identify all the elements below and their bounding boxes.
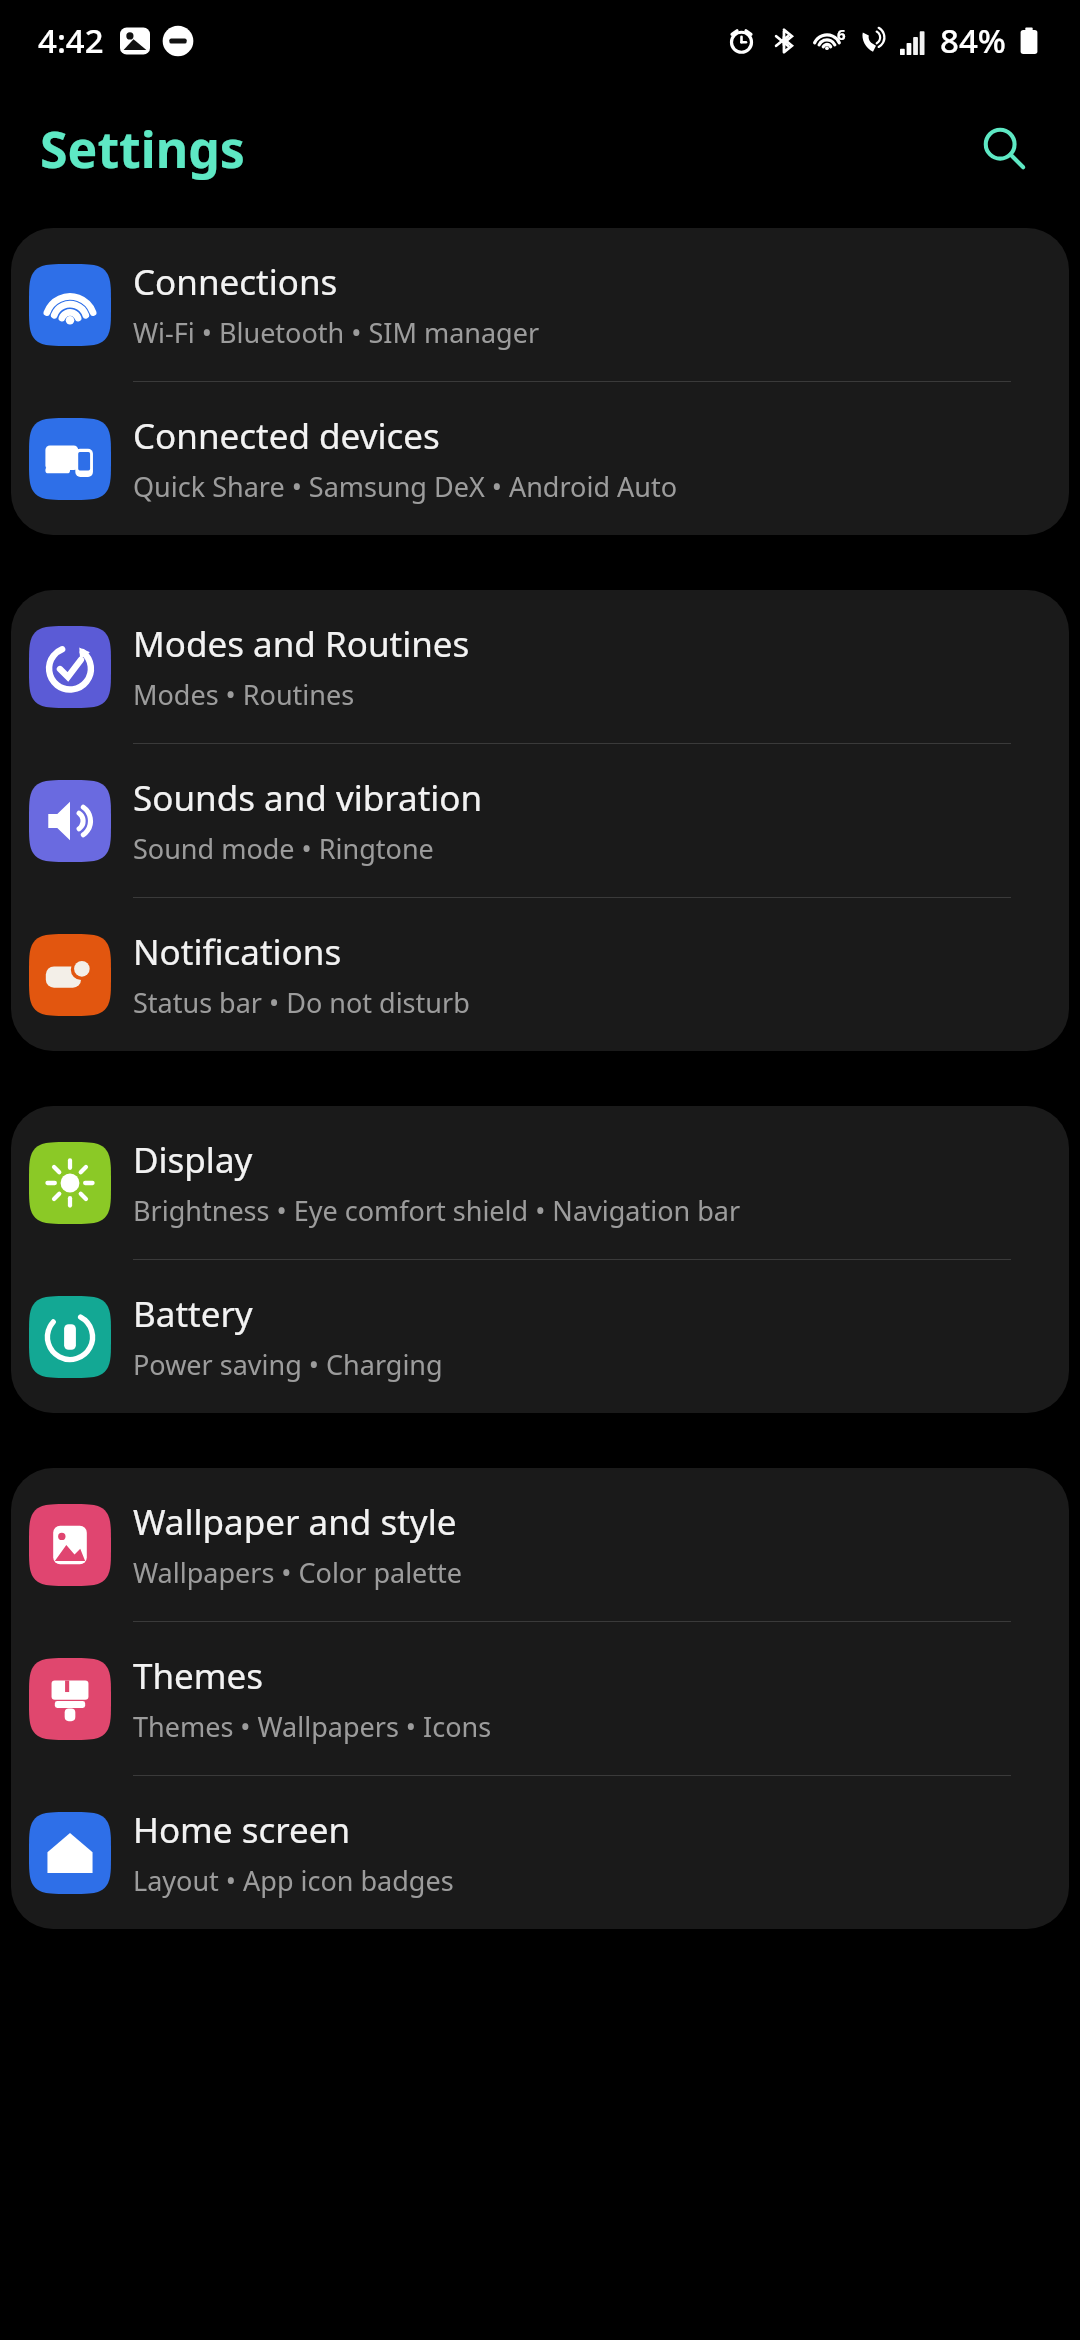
staticText: Wallpaper and style <box>133 1498 457 1546</box>
staticText: Modes • Routines <box>133 676 355 713</box>
staticText: Connections <box>133 258 338 306</box>
button[interactable]: Search <box>962 107 1046 191</box>
staticText: 4:42 <box>38 18 104 63</box>
staticText: Status bar • Do not disturb <box>133 984 470 1021</box>
staticText: Home screen <box>133 1806 351 1854</box>
staticText: Connected devices <box>133 412 440 460</box>
staticText: Notifications <box>133 928 342 976</box>
button[interactable]: Modes and Routines <box>11 590 1069 743</box>
button[interactable]: Home screen <box>11 1776 1069 1929</box>
staticText: Themes • Wallpapers • Icons <box>133 1708 492 1745</box>
staticText: Sounds and vibration <box>133 774 483 822</box>
staticText: Wallpapers • Color palette <box>133 1554 463 1591</box>
staticText: 6 <box>837 24 846 44</box>
staticText: Modes and Routines <box>133 620 470 668</box>
staticText: Layout • App icon badges <box>133 1862 454 1899</box>
button[interactable]: Battery <box>11 1260 1069 1413</box>
button[interactable]: Themes <box>11 1622 1069 1775</box>
staticText: Power saving • Charging <box>133 1346 443 1383</box>
staticText: Brightness • Eye comfort shield • Naviga… <box>133 1192 741 1229</box>
button[interactable]: Connected devices <box>11 382 1069 535</box>
button[interactable]: Sounds and vibration <box>11 744 1069 897</box>
button[interactable]: Notifications <box>11 898 1069 1051</box>
staticText: Settings <box>40 115 245 183</box>
staticText: Display <box>133 1136 253 1184</box>
staticText: 84% <box>940 18 1006 63</box>
staticText: Themes <box>133 1652 264 1700</box>
button[interactable]: Display <box>11 1106 1069 1259</box>
staticText: Quick Share • Samsung DeX • Android Auto <box>133 468 678 505</box>
button[interactable]: Connections <box>11 228 1069 381</box>
staticText: Wi-Fi • Bluetooth • SIM manager <box>133 314 540 351</box>
staticText: Sound mode • Ringtone <box>133 830 434 867</box>
button[interactable]: Wallpaper and style <box>11 1468 1069 1621</box>
staticText: Battery <box>133 1290 253 1338</box>
